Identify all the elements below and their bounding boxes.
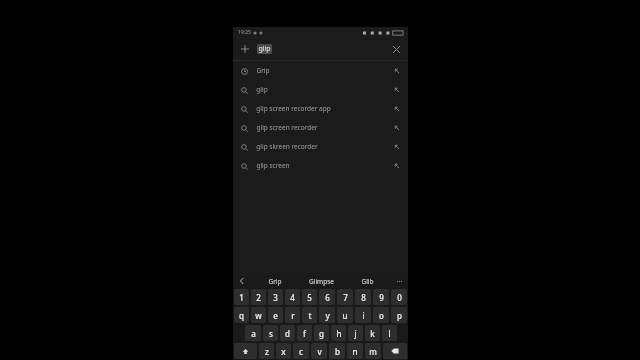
button[interactable]: More options — [390, 274, 408, 288]
button[interactable]: 4 — [285, 289, 300, 305]
button[interactable]: 6 — [319, 289, 335, 305]
staticText: y — [325, 310, 330, 321]
staticText: glip skreen recorder — [256, 142, 318, 151]
staticText: g — [319, 328, 324, 339]
button[interactable]: glip screen recorder — [233, 118, 408, 137]
staticText: 5 — [307, 292, 312, 303]
button[interactable]: d — [280, 325, 295, 341]
button[interactable]: Glib — [344, 274, 390, 288]
staticText: t — [308, 310, 312, 321]
staticText: r — [291, 310, 295, 321]
button[interactable]: 2 — [251, 289, 266, 305]
button[interactable]: t — [302, 307, 317, 323]
staticText: Grip — [256, 66, 270, 75]
button[interactable]: 7 — [337, 289, 353, 305]
staticText: 2 — [256, 292, 261, 303]
staticText: 1 — [239, 292, 244, 303]
staticText: z — [265, 346, 269, 357]
button[interactable]: b — [329, 343, 345, 359]
button[interactable]: Add — [238, 42, 252, 56]
staticText: v — [317, 346, 322, 357]
button[interactable]: 3 — [268, 289, 283, 305]
staticText: q — [239, 310, 244, 321]
button[interactable]: x — [276, 343, 291, 359]
button[interactable]: q — [234, 307, 249, 323]
button[interactable]: h — [331, 325, 346, 341]
button[interactable]: s — [263, 325, 278, 341]
button[interactable]: p — [391, 307, 407, 323]
button[interactable]: a — [245, 325, 261, 341]
staticText: k — [370, 328, 375, 339]
button[interactable]: glip screen recorder app — [233, 99, 408, 118]
button[interactable]: Insert glip screen — [391, 160, 403, 172]
button[interactable]: w — [251, 307, 266, 323]
button[interactable]: k — [365, 325, 380, 341]
button[interactable]: Add — [233, 38, 408, 60]
button[interactable]: i — [355, 307, 371, 323]
staticText: i — [362, 310, 365, 321]
button[interactable]: c — [293, 343, 309, 359]
button[interactable]: n — [347, 343, 363, 359]
staticText: glip screen — [256, 161, 290, 170]
staticText: x — [281, 346, 286, 357]
staticText: 6 — [325, 292, 330, 303]
button[interactable]: g — [314, 325, 329, 341]
staticText: glip — [258, 44, 271, 54]
staticText: m — [369, 346, 377, 357]
button[interactable]: r — [285, 307, 300, 323]
button[interactable]: Previous — [233, 274, 251, 288]
staticText: l — [388, 328, 391, 339]
button[interactable]: Glimpse — [298, 274, 344, 288]
staticText: Glib — [361, 277, 374, 286]
button[interactable]: m — [365, 343, 381, 359]
staticText: Glimpse — [309, 277, 334, 286]
button[interactable]: v — [311, 343, 327, 359]
button[interactable]: Insert glip screen recorder app — [391, 103, 403, 115]
staticText: Grip — [268, 277, 282, 286]
staticText: b — [335, 346, 340, 357]
staticText: s — [269, 328, 273, 339]
button[interactable]: Insert glip skreen recorder — [391, 141, 403, 153]
staticText: 4 — [290, 292, 295, 303]
button[interactable]: 0 — [391, 289, 407, 305]
button[interactable]: Grip — [251, 274, 298, 288]
staticText: glip screen recorder app — [256, 104, 331, 113]
staticText: o — [379, 310, 384, 321]
staticText: w — [255, 310, 262, 321]
button[interactable]: Backspace — [383, 343, 407, 359]
button[interactable]: Insert glip — [391, 84, 403, 96]
button[interactable]: Insert glip screen recorder — [391, 122, 403, 134]
button[interactable]: 9 — [373, 289, 389, 305]
staticText: u — [342, 310, 348, 321]
staticText: 8 — [361, 292, 366, 303]
staticText: e — [273, 310, 278, 321]
button[interactable]: l — [382, 325, 397, 341]
button[interactable]: o — [373, 307, 389, 323]
staticText: 0 — [397, 292, 402, 303]
staticText: a — [251, 328, 256, 339]
button[interactable]: Shift — [234, 343, 257, 359]
staticText: f — [303, 328, 306, 339]
staticText: 7 — [343, 292, 348, 303]
button[interactable]: Insert Grip — [391, 65, 403, 77]
staticText: n — [352, 346, 358, 357]
button[interactable]: u — [337, 307, 353, 323]
staticText: 3 — [273, 292, 278, 303]
button[interactable]: j — [348, 325, 363, 341]
button[interactable]: e — [268, 307, 283, 323]
button[interactable]: Clear — [389, 42, 403, 56]
button[interactable]: glip skreen recorder — [233, 137, 408, 156]
staticText: p — [397, 310, 402, 321]
button[interactable]: glip — [233, 80, 408, 99]
button[interactable]: f — [297, 325, 312, 341]
staticText: 9 — [379, 292, 384, 303]
button[interactable]: z — [259, 343, 274, 359]
button[interactable]: y — [319, 307, 335, 323]
staticText: glip screen recorder — [256, 123, 318, 132]
button[interactable]: 1 — [234, 289, 249, 305]
button[interactable]: 8 — [355, 289, 371, 305]
staticText: d — [285, 328, 290, 339]
button[interactable]: 5 — [302, 289, 317, 305]
button[interactable]: glip screen — [233, 156, 408, 175]
button[interactable]: Grip — [233, 61, 408, 80]
